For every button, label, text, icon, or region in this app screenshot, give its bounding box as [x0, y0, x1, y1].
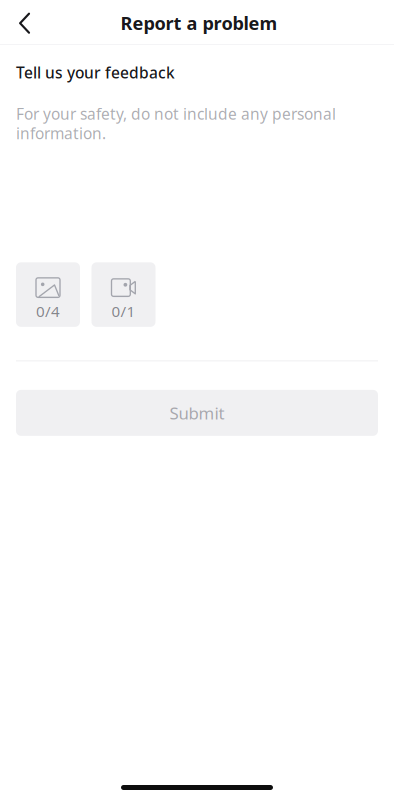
button[interactable]: Add video: [91, 262, 155, 327]
button[interactable]: Add photos: [16, 262, 80, 327]
staticText: 0/1: [111, 301, 135, 322]
staticText: Submit: [169, 401, 224, 424]
staticText: Tell us your feedback: [16, 62, 175, 83]
staticText: For your safety, do not include any pers…: [16, 103, 336, 124]
staticText: Report a problem: [120, 11, 277, 35]
staticText: information.: [16, 123, 106, 144]
button[interactable]: Back: [0, 0, 44, 44]
staticText: 0/4: [36, 301, 60, 322]
button[interactable]: Submit: [16, 390, 378, 436]
